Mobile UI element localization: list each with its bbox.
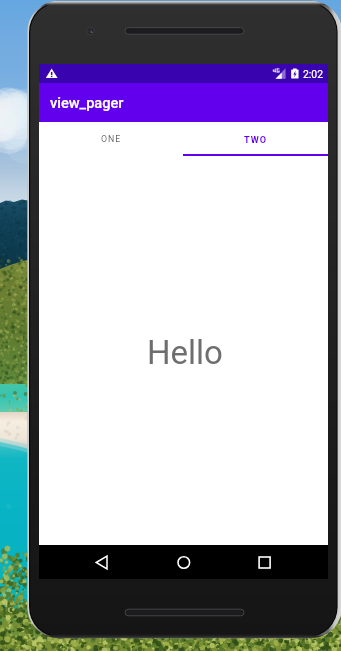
staticText: Hello — [147, 333, 223, 372]
button[interactable]: ONE — [39, 122, 183, 154]
staticText: ONE — [101, 134, 122, 144]
button[interactable]: TWO — [183, 122, 328, 154]
staticText: 2:02 — [303, 68, 324, 80]
staticText: view_pager — [50, 94, 124, 111]
staticText: TWO — [244, 134, 268, 145]
